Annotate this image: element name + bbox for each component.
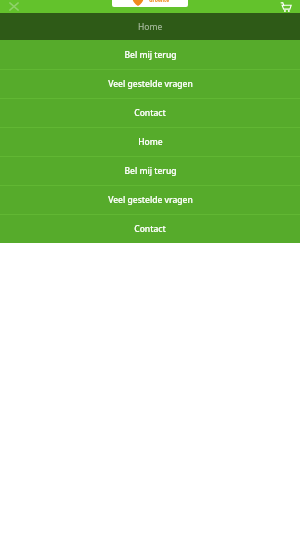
staticText: Veel gestelde vragen — [108, 78, 193, 90]
staticText: Veel gestelde vragen — [108, 194, 193, 206]
button[interactable]: Cart — [276, 0, 296, 13]
button[interactable]: Contact — [0, 98, 300, 127]
button[interactable]: Logo — [112, 0, 188, 7]
button[interactable]: Veel gestelde vragen — [0, 69, 300, 98]
button[interactable]: Bel mij terug — [0, 40, 300, 69]
button[interactable]: Veel gestelde vragen — [0, 185, 300, 214]
staticText: Bel mij terug — [124, 165, 177, 177]
staticText: Home — [138, 21, 163, 33]
button[interactable]: Bel mij terug — [0, 156, 300, 185]
button[interactable]: Contact — [0, 214, 300, 243]
button[interactable]: Close — [4, 0, 24, 13]
button[interactable]: Home — [0, 127, 300, 156]
button[interactable]: Home — [0, 13, 300, 40]
staticText: Bel mij terug — [124, 49, 177, 61]
staticText: Home — [138, 136, 163, 148]
staticText: Contact — [134, 223, 166, 235]
staticText: Groente — [149, 0, 170, 4]
staticText: Contact — [134, 107, 166, 119]
